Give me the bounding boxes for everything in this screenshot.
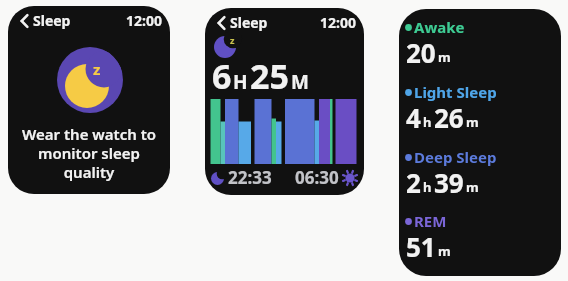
staticText: 06:30 — [295, 166, 339, 189]
staticText: 20 — [406, 35, 436, 70]
button[interactable]: REM — [405, 211, 447, 231]
staticText: Deep Sleep — [414, 147, 497, 167]
staticText: 25 — [250, 53, 289, 99]
staticText: m — [466, 178, 479, 196]
staticText: 26 — [434, 100, 464, 135]
button[interactable]: Sleep — [217, 13, 268, 32]
staticText: 6 — [212, 53, 232, 99]
staticText: Awake — [414, 17, 465, 37]
button[interactable]: Awake — [405, 17, 465, 37]
staticText: h — [423, 113, 432, 131]
staticText: 4 — [406, 100, 421, 135]
staticText: 12:00 — [126, 11, 162, 30]
staticText: z — [230, 34, 235, 46]
staticText: Sleep — [230, 13, 268, 32]
staticText: 51 — [406, 229, 436, 264]
staticText: H — [233, 69, 248, 95]
staticText: 39 — [434, 165, 464, 200]
staticText: Light Sleep — [414, 82, 497, 102]
staticText: m — [466, 113, 479, 131]
staticText: Wear the watch to monitor sleep quality — [8, 124, 170, 182]
staticText: m — [438, 242, 451, 260]
staticText: REM — [414, 211, 447, 231]
button[interactable]: Light Sleep — [405, 82, 497, 102]
staticText: m — [438, 48, 451, 66]
staticText: 12:00 — [320, 13, 356, 32]
staticText: h — [423, 178, 432, 196]
staticText: 22:33 — [228, 166, 272, 189]
button[interactable]: Sleep — [20, 11, 71, 30]
staticText: z — [93, 59, 101, 79]
staticText: M — [291, 69, 309, 95]
button[interactable]: Deep Sleep — [405, 147, 497, 167]
staticText: Sleep — [33, 11, 71, 30]
staticText: 2 — [406, 165, 421, 200]
